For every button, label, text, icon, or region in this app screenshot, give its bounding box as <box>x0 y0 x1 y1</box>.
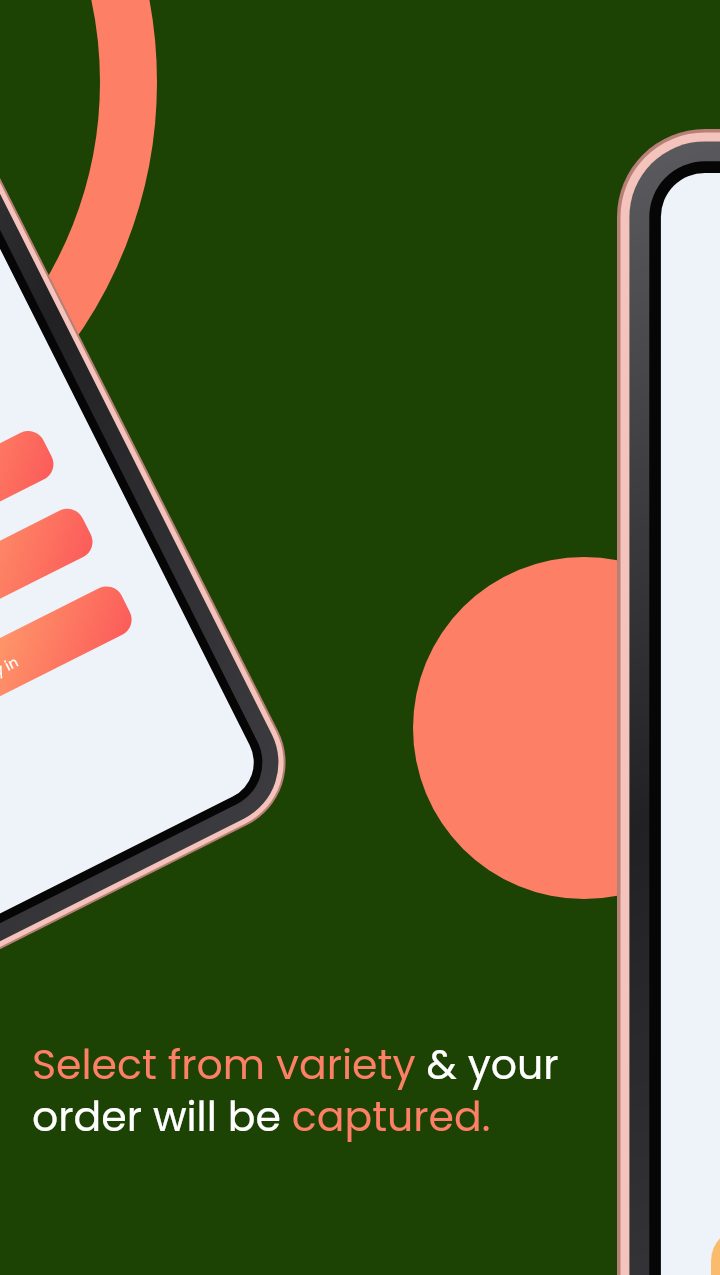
staticText: Select from variety & your order will be… <box>32 1036 559 1145</box>
